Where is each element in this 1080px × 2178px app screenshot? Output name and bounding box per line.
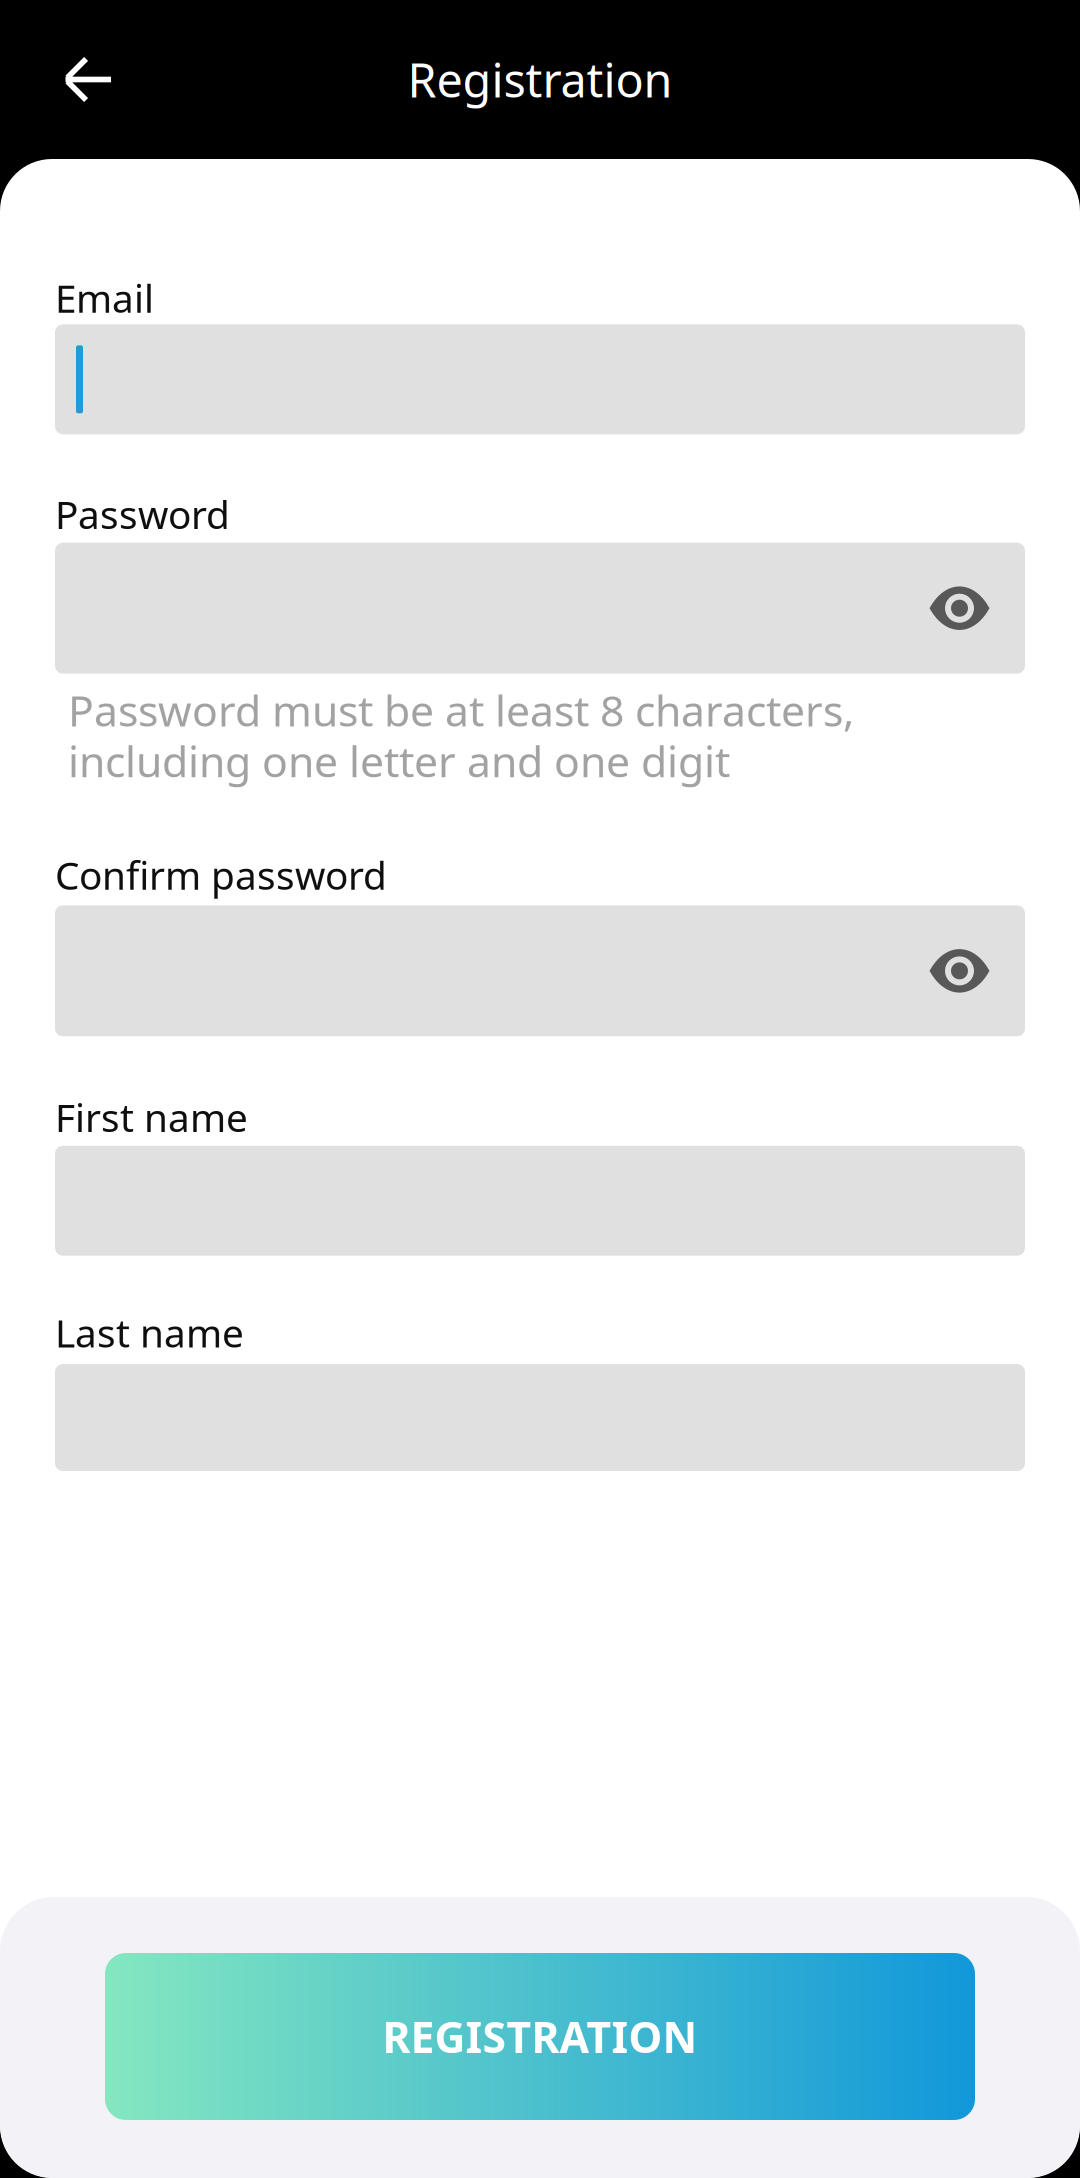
button[interactable]: Show password — [912, 543, 1007, 674]
staticText: Password must be at least 8 characters, … — [68, 682, 854, 789]
button[interactable]: Show password — [912, 905, 1007, 1036]
staticText: First name — [55, 1091, 248, 1143]
staticText: Email — [55, 272, 154, 323]
button[interactable]: Back — [33, 24, 143, 134]
staticText: REGISTRATION — [382, 2008, 697, 2065]
staticText: Last name — [55, 1307, 244, 1358]
button[interactable]: REGISTRATION — [105, 1953, 975, 2120]
staticText: Confirm password — [55, 849, 387, 900]
staticText: Password — [55, 488, 230, 540]
staticText: Registration — [407, 48, 672, 110]
